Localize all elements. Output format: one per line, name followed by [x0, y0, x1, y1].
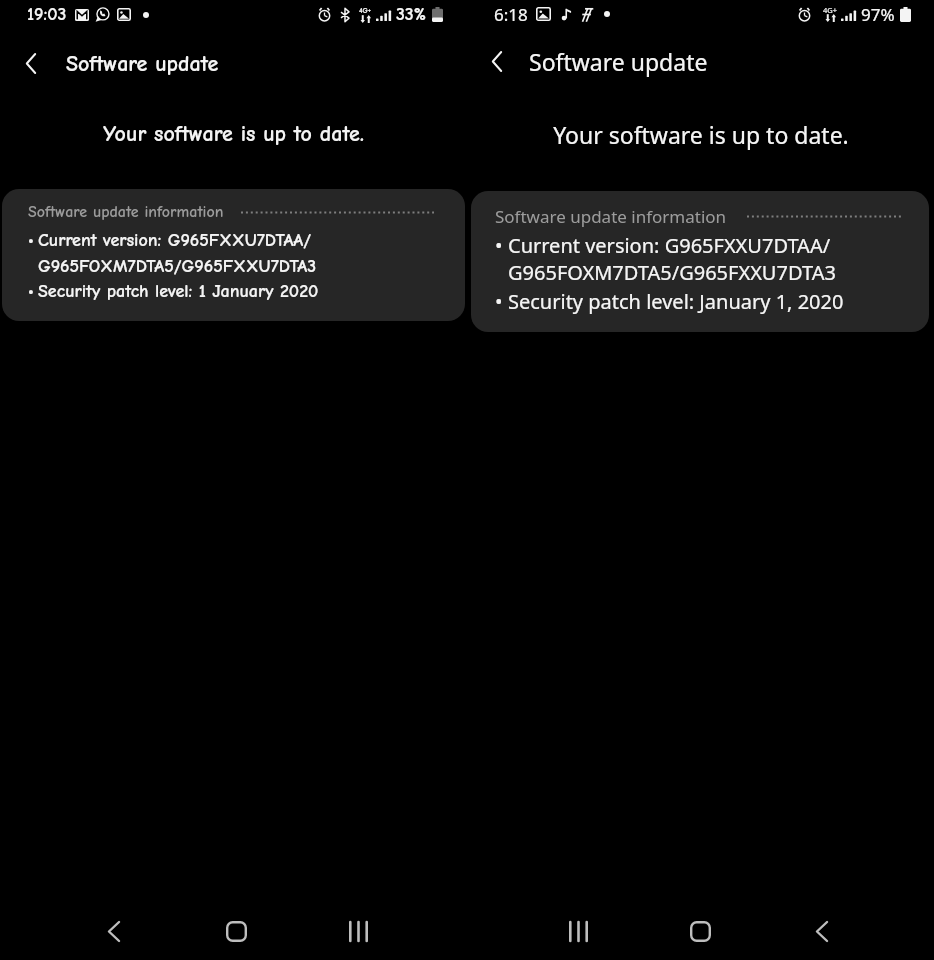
button[interactable]: Software update information [2, 189, 465, 321]
button[interactable]: Navigate up [467, 41, 527, 81]
button[interactable]: Back [761, 908, 883, 954]
staticText: • [28, 230, 35, 251]
button[interactable]: Home [639, 908, 761, 954]
staticText: Current version: G965FXXU7DTAA/ G965FOXM… [38, 230, 317, 276]
button[interactable]: Recent apps [517, 908, 639, 954]
button[interactable]: Home [175, 908, 297, 954]
staticText: 33% [396, 4, 427, 25]
staticText: • [28, 281, 35, 302]
staticText: 19:03 [27, 4, 67, 25]
staticText: Software update [529, 46, 708, 77]
staticText: Software update information [495, 205, 727, 228]
staticText: Current version: G965FXXU7DTAA/ G965FOXM… [508, 232, 836, 286]
button[interactable]: Back [53, 908, 175, 954]
button[interactable]: Software update information [471, 191, 929, 332]
staticText: 4G+ [823, 5, 838, 15]
staticText: Software update [66, 51, 219, 76]
staticText: • [495, 288, 503, 315]
staticText: Your software is up to date. [103, 121, 364, 146]
staticText: Security patch level: 1 January 2020 [38, 281, 319, 302]
staticText: 6:18 [494, 3, 528, 26]
staticText: 4G+ [359, 6, 372, 15]
staticText: Software update information [28, 203, 224, 221]
staticText: Your software is up to date. [553, 119, 849, 150]
button[interactable]: Navigate up [0, 43, 62, 83]
staticText: Security patch level: January 1, 2020 [508, 288, 844, 315]
staticText: • [495, 232, 503, 259]
button[interactable]: Recent apps [297, 908, 419, 954]
staticText: 97% [861, 3, 895, 26]
